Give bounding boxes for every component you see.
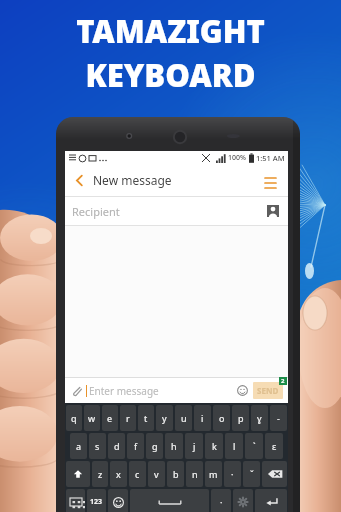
other: Shift xyxy=(73,469,83,479)
staticText: l xyxy=(233,440,236,452)
staticText: i xyxy=(201,412,204,424)
staticText: 2 xyxy=(281,377,285,385)
button[interactable]: a xyxy=(70,433,87,459)
staticText: KEYBOARD xyxy=(85,54,256,96)
staticText: - xyxy=(277,412,280,424)
button[interactable]: h xyxy=(165,433,183,459)
button[interactable]: t xyxy=(138,405,154,431)
button[interactable]: Add contact xyxy=(265,203,281,219)
staticText: y xyxy=(162,412,167,424)
button[interactable]: o xyxy=(213,405,230,431)
staticText: ɛ xyxy=(272,440,277,452)
staticText: · xyxy=(231,468,234,480)
other: Space xyxy=(155,499,185,506)
staticText: ɣ xyxy=(257,412,262,424)
button[interactable]: Emoji xyxy=(235,383,250,398)
staticText: n xyxy=(192,468,198,480)
staticText: e xyxy=(107,412,113,424)
staticText: u xyxy=(181,412,187,424)
button[interactable]: ɣ xyxy=(251,405,268,431)
button[interactable]: SEND xyxy=(253,382,283,399)
staticText: · xyxy=(220,496,223,508)
button[interactable]: l xyxy=(225,433,243,459)
button[interactable]: ɛ xyxy=(265,433,283,459)
staticText: b xyxy=(173,468,179,480)
button[interactable]: · xyxy=(224,461,241,487)
button[interactable]: f xyxy=(127,433,144,459)
staticText: j xyxy=(193,440,196,452)
other: Emoji xyxy=(113,497,124,508)
staticText: New message xyxy=(93,172,172,188)
staticText: h xyxy=(171,440,177,452)
staticText: 123 xyxy=(90,497,103,507)
button[interactable]: 123 xyxy=(87,489,106,512)
button[interactable]: n xyxy=(186,461,203,487)
staticText: TAMAZIGHT xyxy=(76,10,265,52)
staticText: 1:51 AM xyxy=(256,153,285,163)
staticText: p xyxy=(238,412,244,424)
staticText: ˇ xyxy=(250,468,254,480)
button[interactable]: Attach xyxy=(69,383,84,398)
other: Switch keyboard xyxy=(70,498,82,506)
button[interactable]: w xyxy=(84,405,100,431)
button[interactable]: r xyxy=(120,405,136,431)
staticText: o xyxy=(219,412,225,424)
button[interactable]: k xyxy=(205,433,223,459)
button[interactable]: x xyxy=(110,461,127,487)
staticText: v xyxy=(154,468,159,480)
button[interactable]: c xyxy=(129,461,146,487)
button[interactable]: u xyxy=(175,405,192,431)
staticText: z xyxy=(98,468,103,480)
button[interactable]: ` xyxy=(245,433,263,459)
button[interactable]: s xyxy=(89,433,106,459)
button[interactable]: g xyxy=(146,433,163,459)
other: Backspace xyxy=(267,469,283,479)
staticText: 100% xyxy=(228,153,246,163)
button[interactable]: e xyxy=(102,405,118,431)
button[interactable]: y xyxy=(156,405,173,431)
staticText: f xyxy=(134,440,138,452)
button[interactable]: · xyxy=(211,489,231,512)
staticText: ` xyxy=(253,440,256,452)
button[interactable]: Back xyxy=(65,166,93,194)
staticText: SEND xyxy=(257,385,279,396)
button[interactable]: Shift xyxy=(66,461,90,487)
staticText: x xyxy=(116,468,121,480)
button[interactable]: d xyxy=(108,433,125,459)
button[interactable]: v xyxy=(148,461,165,487)
button[interactable]: z xyxy=(92,461,108,487)
button[interactable]: Emoji xyxy=(108,489,128,512)
staticText: Recipient xyxy=(72,204,120,219)
other: Enter xyxy=(265,497,278,507)
staticText: s xyxy=(95,440,100,452)
button[interactable]: m xyxy=(205,461,222,487)
button[interactable]: Backspace xyxy=(262,461,287,487)
button[interactable]: - xyxy=(270,405,287,431)
button[interactable]: i xyxy=(194,405,211,431)
staticText: g xyxy=(152,440,158,452)
staticText: r xyxy=(126,412,130,424)
staticText: c xyxy=(135,468,140,480)
button[interactable]: Menu xyxy=(255,165,285,195)
button[interactable]: p xyxy=(232,405,249,431)
staticText: Enter message xyxy=(89,384,159,398)
button[interactable]: j xyxy=(185,433,203,459)
staticText: d xyxy=(114,440,120,452)
other: Settings xyxy=(238,497,248,507)
button[interactable]: Space xyxy=(130,489,209,512)
staticText: k xyxy=(212,440,217,452)
staticText: m xyxy=(209,468,218,480)
button[interactable]: Switch keyboard xyxy=(66,489,85,512)
staticText: w xyxy=(88,412,96,424)
button[interactable]: ˇ xyxy=(243,461,260,487)
staticText: t xyxy=(144,412,148,424)
button[interactable]: Enter xyxy=(255,489,287,512)
button[interactable]: q xyxy=(66,405,82,431)
staticText: a xyxy=(76,440,82,452)
button[interactable]: b xyxy=(167,461,184,487)
button[interactable]: Settings xyxy=(233,489,253,512)
staticText: q xyxy=(71,412,77,424)
button[interactable]: Recipient xyxy=(65,197,288,225)
